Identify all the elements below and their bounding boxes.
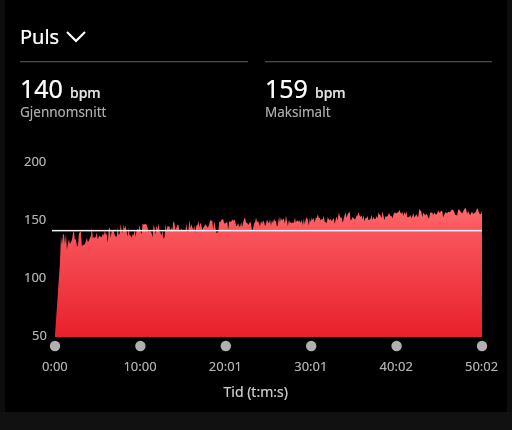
button[interactable]: Puls – velg måling [0,0,92,34]
